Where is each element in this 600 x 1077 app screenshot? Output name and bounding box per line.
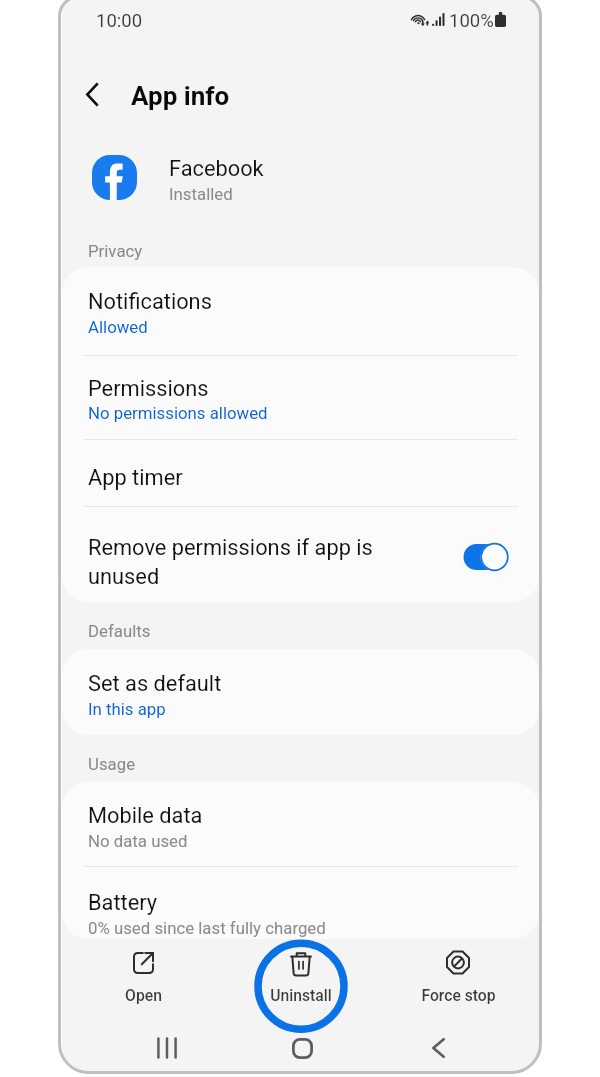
staticText: Allowed <box>88 317 148 337</box>
staticText: No data used <box>88 831 188 851</box>
button[interactable]: Mobile data <box>62 782 539 866</box>
staticText: App timer <box>88 465 183 491</box>
staticText: Installed <box>169 184 233 204</box>
staticText: 0% used since last fully charged <box>88 918 326 938</box>
staticText: Force stop <box>421 986 496 1004</box>
staticText: Privacy <box>88 241 143 261</box>
staticText: Permissions <box>88 376 209 402</box>
button[interactable]: App timer <box>62 439 539 506</box>
button[interactable]: Recents <box>143 1024 191 1072</box>
staticText: Open <box>125 986 162 1004</box>
staticText: 10:00 <box>96 10 143 32</box>
button[interactable]: Permissions <box>62 355 539 439</box>
staticText: Remove permissions if app is <box>88 535 373 561</box>
button[interactable]: Uninstall <box>249 945 353 1007</box>
staticText: Uninstall <box>270 986 332 1004</box>
button[interactable]: Remove permissions if app is <box>62 506 539 602</box>
button[interactable]: Back <box>70 72 114 116</box>
button[interactable]: Battery <box>62 866 539 939</box>
staticText: No permissions allowed <box>88 403 268 423</box>
button[interactable]: Back <box>414 1024 462 1072</box>
staticText: Facebook <box>169 156 264 182</box>
button[interactable]: Notifications <box>62 267 539 355</box>
button[interactable]: Open <box>91 945 195 1007</box>
staticText: App info <box>131 81 230 111</box>
button[interactable]: Force stop <box>406 945 510 1007</box>
staticText: Battery <box>88 890 158 916</box>
staticText: Mobile data <box>88 803 203 829</box>
staticText: Usage <box>88 754 136 774</box>
button[interactable]: Remove permissions if app is unused togg… <box>460 538 514 576</box>
staticText: unused <box>88 564 160 590</box>
button[interactable]: Home <box>278 1024 326 1072</box>
button[interactable]: Set as default <box>62 649 539 735</box>
staticText: Defaults <box>88 621 151 641</box>
staticText: 100% <box>449 10 494 32</box>
staticText: Notifications <box>88 289 212 315</box>
staticText: In this app <box>88 699 166 719</box>
staticText: Set as default <box>88 671 222 697</box>
